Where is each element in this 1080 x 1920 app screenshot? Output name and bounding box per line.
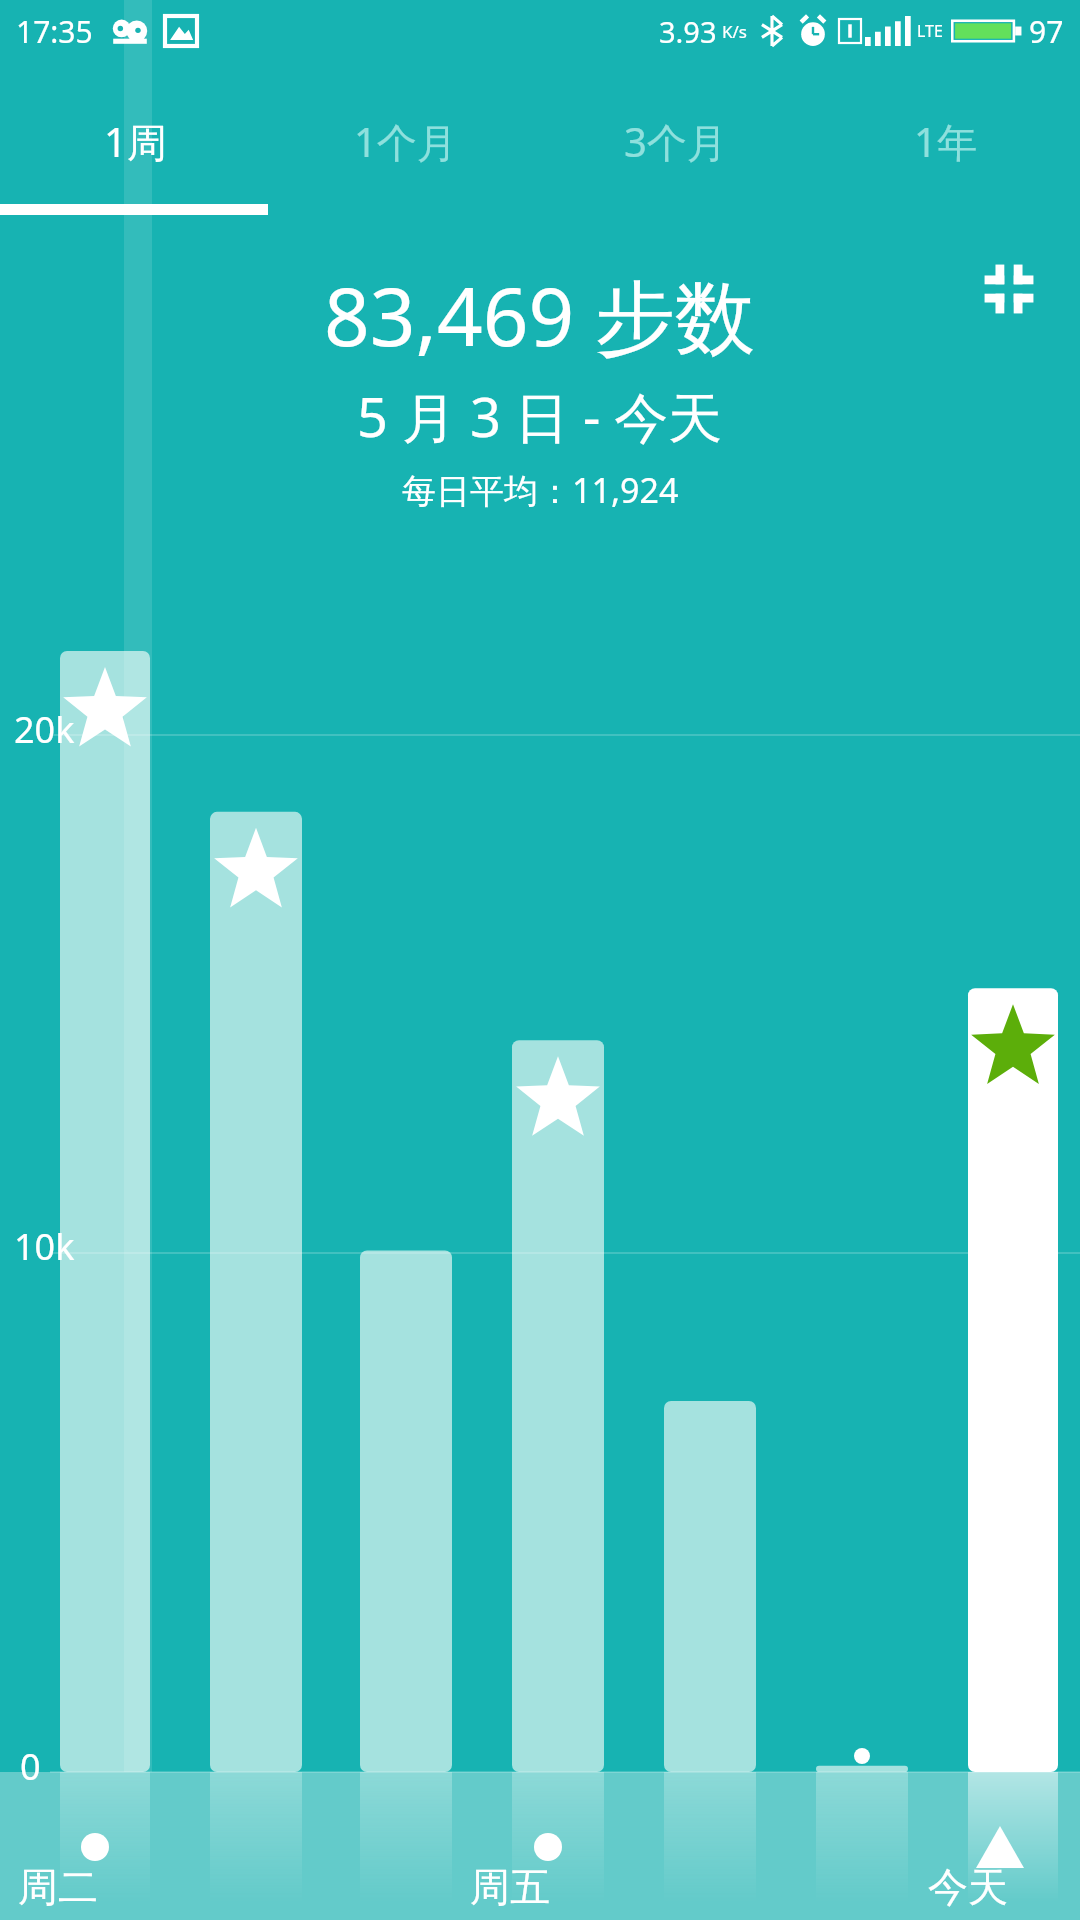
- staticText: 周二: [18, 1862, 98, 1912]
- staticText: LTE: [917, 20, 943, 42]
- staticText: 1周: [104, 114, 167, 169]
- staticText: 3个月: [624, 114, 727, 169]
- staticText: 3.93: [659, 12, 717, 51]
- staticText: 17:35: [16, 11, 93, 52]
- staticText: 0: [20, 1742, 41, 1791]
- staticText: 10k: [14, 1222, 75, 1271]
- staticText: 97: [1029, 11, 1064, 52]
- button[interactable]: 3个月: [540, 62, 810, 220]
- staticText: 1个月: [354, 114, 457, 169]
- staticText: 5 月 3 日 - 今天: [357, 379, 723, 453]
- staticText: 83,469 步数: [324, 260, 756, 369]
- button[interactable]: 1周: [0, 62, 270, 220]
- staticText: K/s: [722, 20, 747, 43]
- button[interactable]: 1个月: [270, 62, 540, 220]
- staticText: 今天: [928, 1862, 1008, 1912]
- staticText: 20k: [14, 705, 75, 754]
- staticText: 1年: [914, 114, 977, 169]
- staticText: 周五: [470, 1862, 550, 1912]
- button[interactable]: 1年: [810, 62, 1080, 220]
- staticText: 每日平均：11,924: [402, 467, 679, 513]
- button[interactable]: Collapse chart: [968, 248, 1050, 330]
